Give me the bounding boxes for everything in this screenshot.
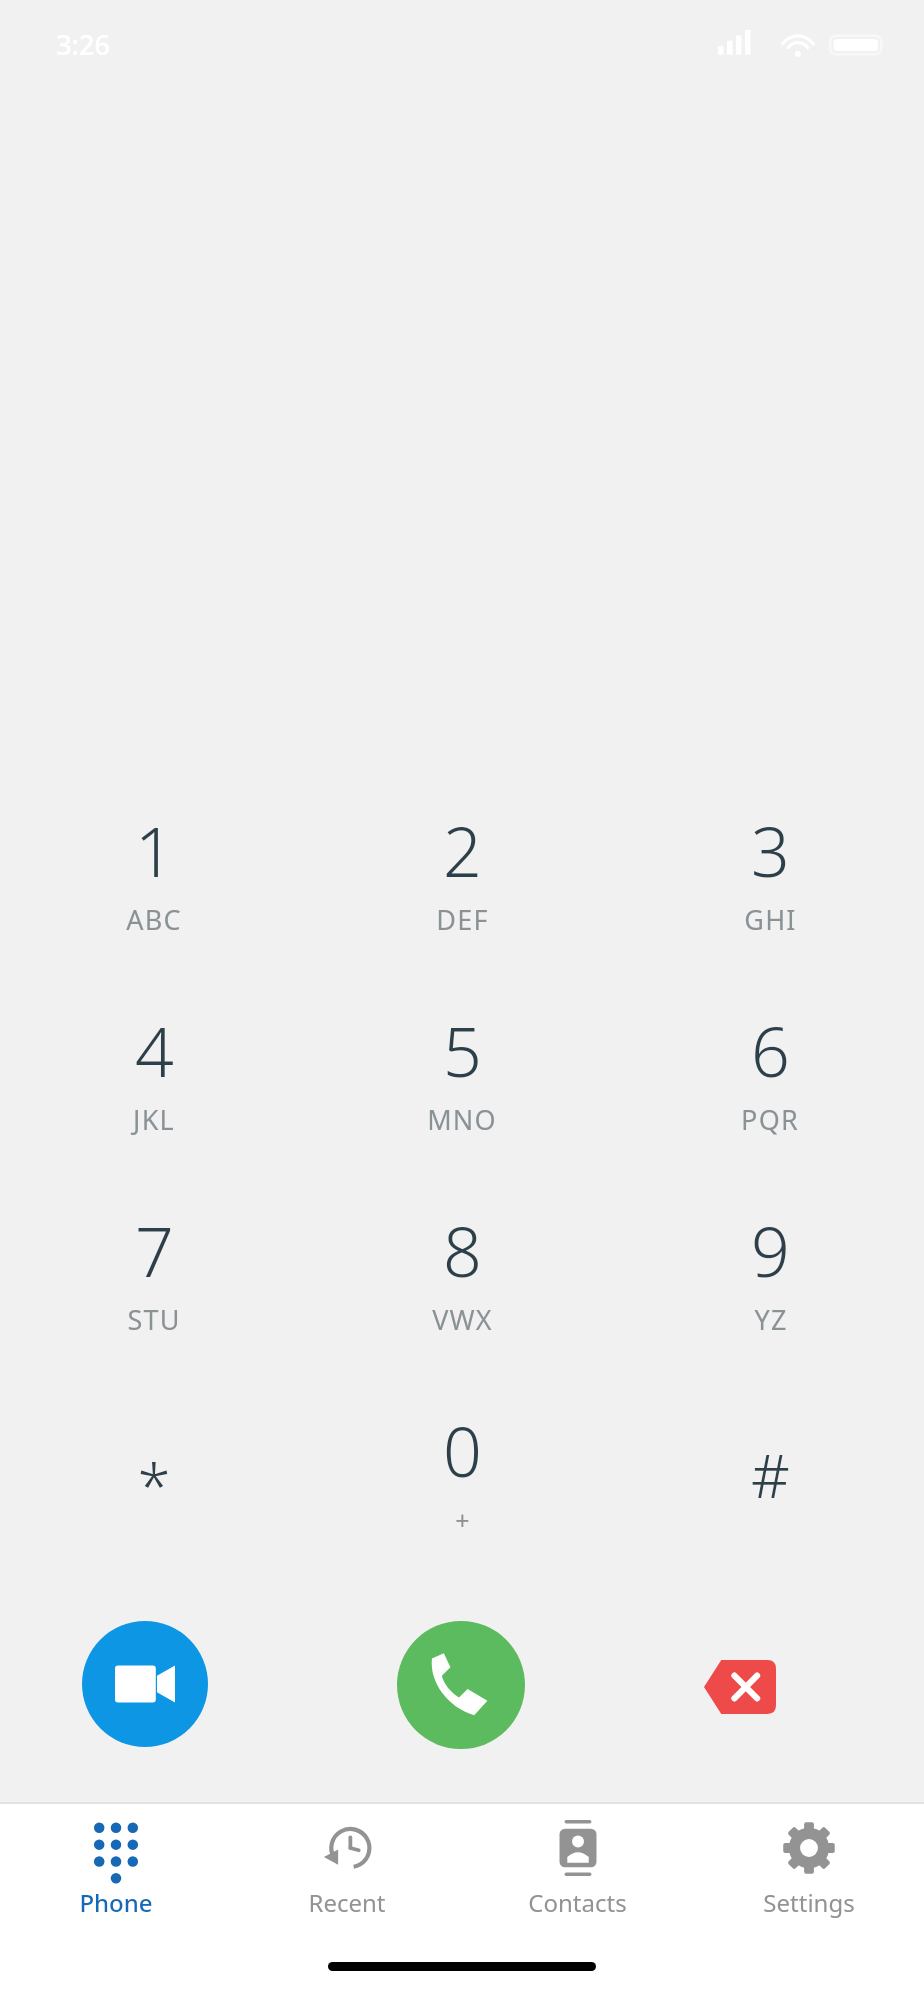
staticText: MNO <box>427 1101 497 1138</box>
staticText: DEF <box>436 901 489 938</box>
button[interactable]: 3 <box>616 786 924 986</box>
button[interactable]: # <box>616 1386 924 1586</box>
button[interactable]: Call <box>397 1621 525 1749</box>
staticText: 4 <box>135 1004 174 1097</box>
staticText: YZ <box>754 1301 788 1338</box>
staticText: 5 <box>443 1004 482 1097</box>
staticText: Phone <box>79 1886 153 1919</box>
staticText: 0 <box>443 1404 482 1497</box>
staticText: 1 <box>135 804 174 897</box>
staticText: ABC <box>126 901 182 938</box>
staticText: 7 <box>135 1204 174 1297</box>
staticText: * <box>137 1444 171 1526</box>
button[interactable]: 5 <box>308 986 616 1186</box>
staticText: Contacts <box>528 1886 627 1919</box>
button[interactable]: 0 <box>308 1386 616 1586</box>
button[interactable]: 2 <box>308 786 616 986</box>
button[interactable]: Video call <box>82 1621 208 1747</box>
staticText: Recent <box>308 1886 386 1919</box>
button[interactable]: 4 <box>0 986 308 1186</box>
button[interactable]: Backspace <box>690 1657 790 1717</box>
staticText: GHI <box>744 901 797 938</box>
staticText: PQR <box>741 1101 799 1138</box>
staticText: 3 <box>751 804 790 897</box>
button[interactable]: 6 <box>616 986 924 1186</box>
staticText: VWX <box>432 1301 493 1338</box>
button[interactable]: Phone <box>0 1804 231 1944</box>
staticText: 3:26 <box>56 26 110 63</box>
button[interactable]: 1 <box>0 786 308 986</box>
staticText: 9 <box>751 1204 790 1297</box>
staticText: + <box>455 1503 470 1537</box>
staticText: # <box>751 1434 790 1516</box>
button[interactable]: * <box>0 1386 308 1586</box>
button[interactable]: 7 <box>0 1186 308 1386</box>
staticText: STU <box>127 1301 181 1338</box>
button[interactable]: Contacts <box>462 1804 693 1944</box>
button[interactable]: 8 <box>308 1186 616 1386</box>
button[interactable]: Settings <box>693 1804 924 1944</box>
staticText: Settings <box>763 1886 855 1919</box>
staticText: 2 <box>443 804 482 897</box>
staticText: 6 <box>751 1004 790 1097</box>
staticText: 8 <box>443 1204 482 1297</box>
staticText: JKL <box>133 1101 175 1138</box>
button[interactable]: 9 <box>616 1186 924 1386</box>
button[interactable]: Recent <box>231 1804 462 1944</box>
